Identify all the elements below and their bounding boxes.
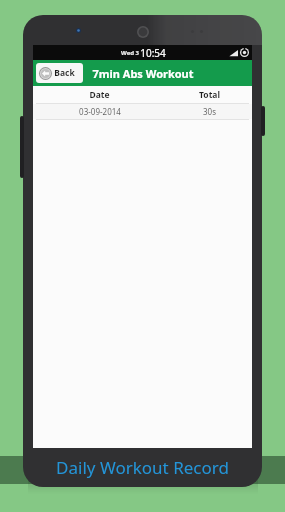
button[interactable]: Back bbox=[36, 63, 83, 83]
staticText: 10:54 bbox=[140, 46, 166, 60]
staticText: 30s bbox=[203, 106, 216, 117]
staticText: Wed 3 bbox=[120, 49, 140, 57]
button[interactable]: 03-09-2014 bbox=[33, 104, 252, 119]
staticText: Back bbox=[54, 67, 75, 79]
staticText: 03-09-2014 bbox=[79, 106, 121, 117]
staticText: Daily Workout Record bbox=[56, 456, 229, 479]
staticText: Date bbox=[89, 89, 110, 101]
staticText: Total bbox=[199, 89, 220, 101]
staticText: 7min Abs Workout bbox=[92, 66, 194, 81]
